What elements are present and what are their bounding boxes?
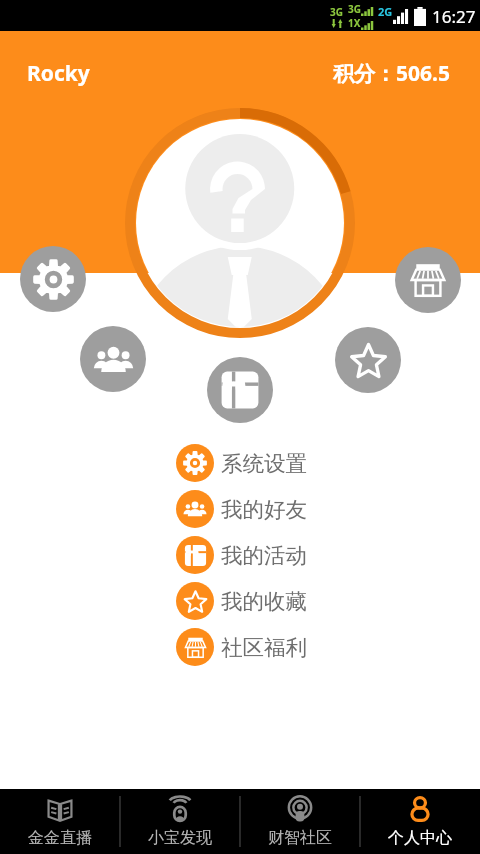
staticText: 小宝发现 xyxy=(148,828,212,848)
button[interactable]: 我的活动 xyxy=(176,532,351,578)
button[interactable]: Friends xyxy=(80,326,146,392)
staticText: 3G xyxy=(348,2,361,16)
staticText: 2G xyxy=(378,4,393,19)
button[interactable]: 金金直播 xyxy=(0,789,120,854)
staticText: 我的好友 xyxy=(221,496,307,523)
button[interactable]: 小宝发现 xyxy=(120,789,240,854)
staticText: 个人中心 xyxy=(388,828,452,848)
staticText: 3G xyxy=(330,5,343,19)
button[interactable]: 我的收藏 xyxy=(176,578,351,624)
staticText: 系统设置 xyxy=(221,450,307,477)
button[interactable]: 我的好友 xyxy=(176,486,351,532)
button[interactable]: 系统设置 xyxy=(176,440,351,486)
staticText: 金金直播 xyxy=(28,828,92,848)
staticText: 财智社区 xyxy=(268,828,332,848)
staticText: 1X xyxy=(348,16,361,30)
button[interactable]: 个人中心 xyxy=(360,789,480,854)
staticText: 我的活动 xyxy=(221,542,307,569)
button[interactable]: Store xyxy=(395,247,461,313)
staticText: 我的收藏 xyxy=(221,588,307,615)
staticText: Rocky xyxy=(27,59,90,88)
staticText: 16:27 xyxy=(432,5,476,28)
button[interactable]: 财智社区 xyxy=(240,789,360,854)
button[interactable]: Gift xyxy=(207,357,273,423)
button[interactable]: Settings xyxy=(20,246,86,312)
button[interactable]: Favorites xyxy=(335,327,401,393)
button[interactable]: Avatar xyxy=(125,108,355,338)
staticText: 社区福利 xyxy=(221,634,307,661)
staticText: 积分：506.5 xyxy=(333,59,450,88)
button[interactable]: 社区福利 xyxy=(176,624,351,670)
